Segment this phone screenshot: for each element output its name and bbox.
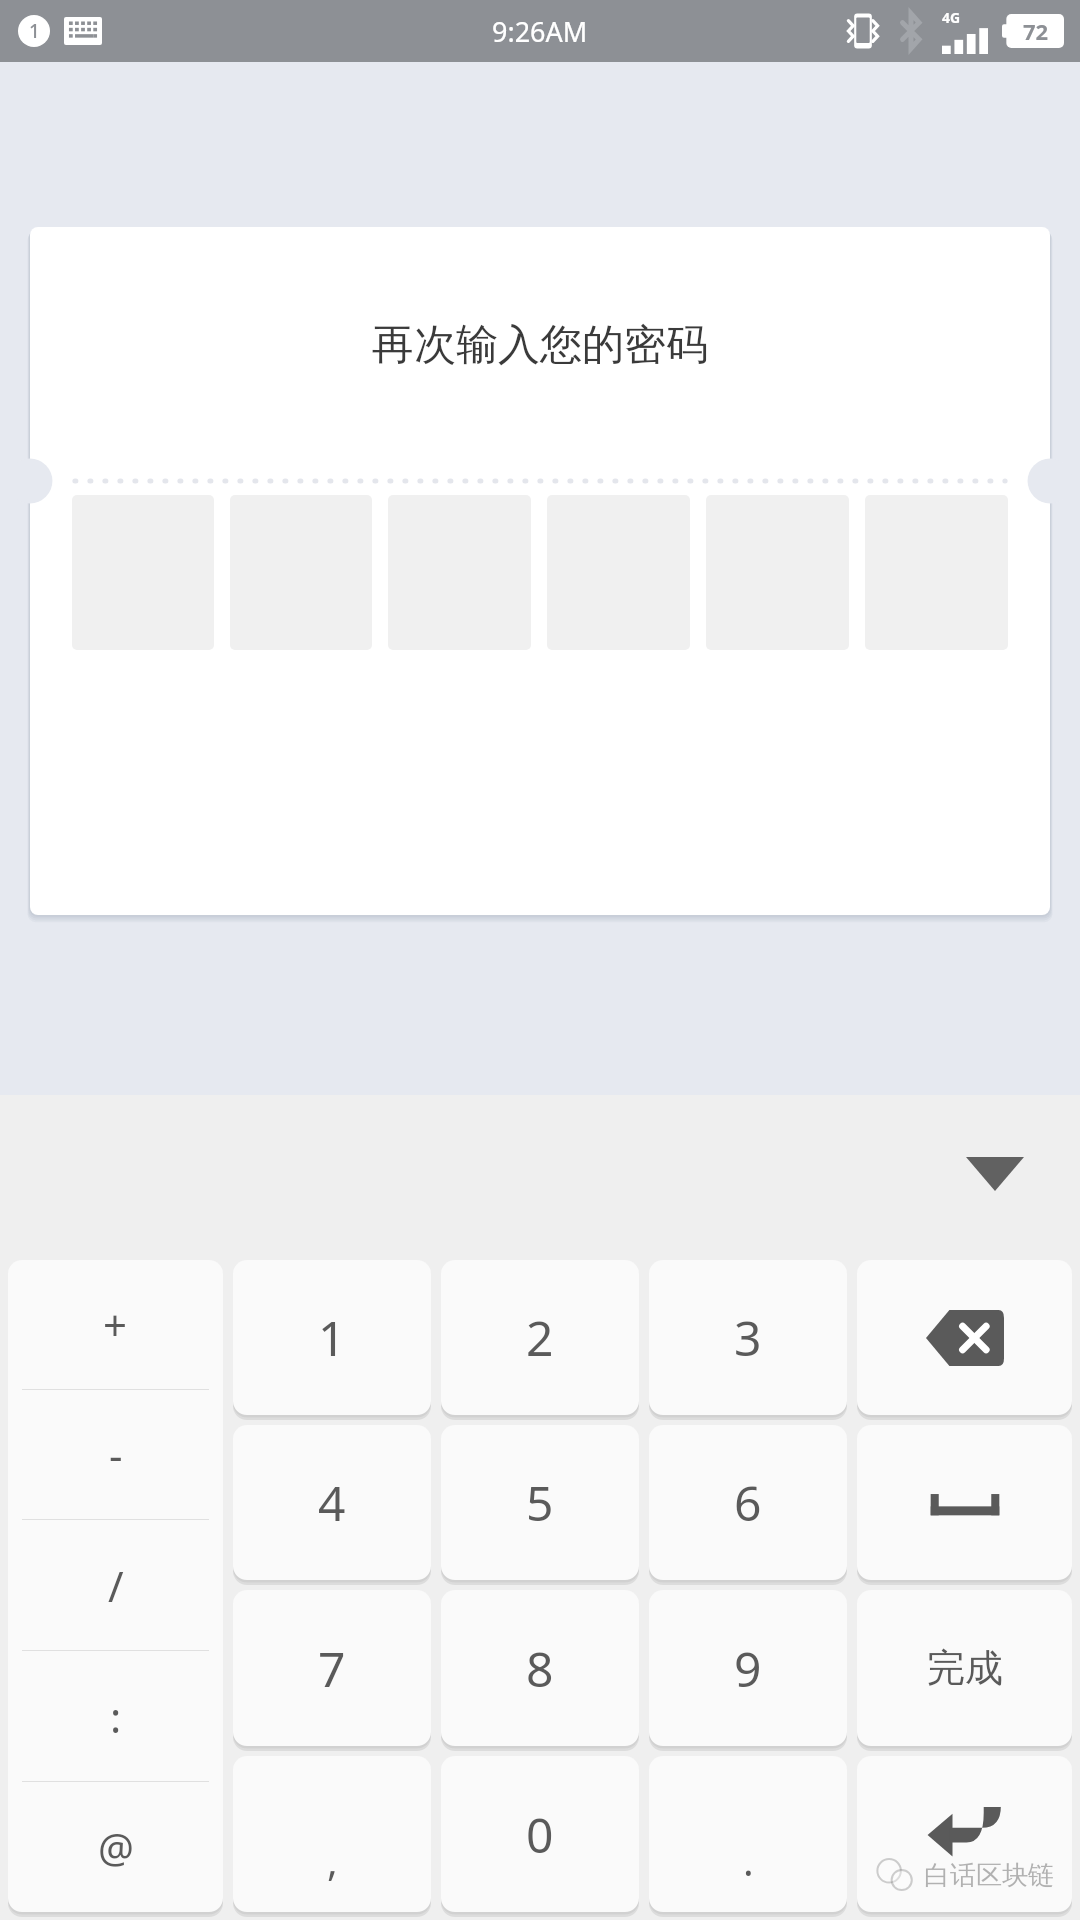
staticText: @ <box>98 1820 134 1874</box>
staticText: 3 <box>734 1305 762 1370</box>
staticText: , <box>327 1833 338 1887</box>
button[interactable]: . <box>649 1756 847 1912</box>
button[interactable]: 4 <box>233 1425 431 1580</box>
staticText: 完成 <box>927 1644 1003 1692</box>
button[interactable]: 5 <box>441 1425 639 1580</box>
button[interactable]: 完成 <box>857 1590 1072 1746</box>
staticText: / <box>108 1557 124 1614</box>
staticText: . <box>743 1833 754 1887</box>
staticText: 4G <box>942 8 961 27</box>
button[interactable]: : <box>8 1651 223 1781</box>
staticText: 9 <box>734 1636 762 1701</box>
staticText: 再次输入您的密码 <box>372 319 708 372</box>
button[interactable]: 2 <box>441 1260 639 1415</box>
button[interactable]: 6 <box>649 1425 847 1580</box>
button[interactable]: Backspace <box>857 1260 1072 1415</box>
staticText: 72 <box>1023 16 1049 46</box>
staticText: : <box>110 1688 122 1745</box>
staticText: 2 <box>526 1305 554 1370</box>
button[interactable]: 1 <box>233 1260 431 1415</box>
button[interactable]: 0 <box>441 1756 639 1912</box>
button[interactable]: @ <box>8 1782 223 1912</box>
staticText: 4 <box>318 1470 346 1535</box>
staticText: 7 <box>318 1636 346 1701</box>
button[interactable]: Hide keyboard <box>952 1131 1038 1217</box>
button[interactable]: 8 <box>441 1590 639 1746</box>
staticText: 1 <box>318 1305 346 1370</box>
button[interactable]: , <box>233 1756 431 1912</box>
staticText: 0 <box>526 1802 554 1867</box>
staticText: 8 <box>526 1636 554 1701</box>
button[interactable]: 3 <box>649 1260 847 1415</box>
button[interactable]: / <box>8 1520 223 1650</box>
staticText: 白话区块链 <box>924 1859 1054 1892</box>
staticText: 5 <box>526 1470 554 1535</box>
staticText: + <box>103 1296 128 1353</box>
staticText: - <box>109 1426 123 1483</box>
staticText: 9:26AM <box>492 13 588 50</box>
button[interactable]: 7 <box>233 1590 431 1746</box>
button[interactable]: - <box>8 1390 223 1519</box>
button[interactable]: + <box>8 1260 223 1389</box>
button[interactable]: Space <box>857 1425 1072 1580</box>
button[interactable]: Enter <box>857 1756 1072 1912</box>
staticText: 6 <box>734 1470 762 1535</box>
button[interactable]: 9 <box>649 1590 847 1746</box>
staticText: 1 <box>29 18 40 44</box>
